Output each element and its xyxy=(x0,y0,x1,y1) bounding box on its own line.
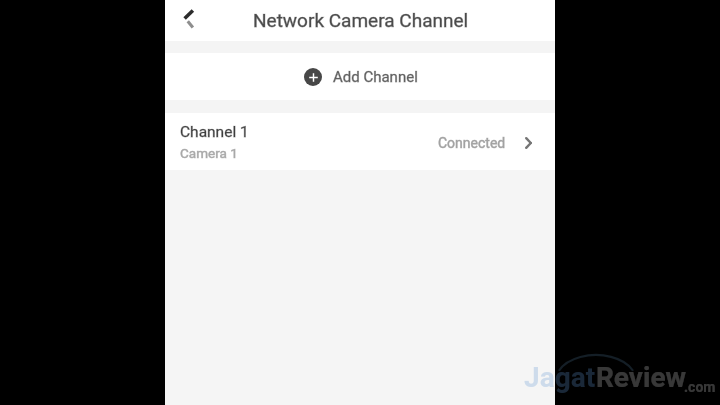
staticText: Add Channel xyxy=(333,68,418,86)
staticText: Network Camera Channel xyxy=(253,9,469,31)
staticText: Channel 1 xyxy=(180,123,249,141)
staticText: Connected xyxy=(438,135,506,151)
staticText: Channel 1 xyxy=(180,123,249,141)
staticText: Camera 1 xyxy=(180,145,238,161)
button[interactable]: Channel 1 xyxy=(165,113,555,170)
staticText: Add Channel xyxy=(333,68,418,86)
staticText: .com xyxy=(684,379,716,395)
staticText: Camera 1 xyxy=(180,145,238,161)
staticText: Jagat xyxy=(524,361,596,394)
button[interactable]: Back xyxy=(168,1,208,41)
staticText: Network Camera Channel xyxy=(253,9,469,31)
staticText: Review xyxy=(596,361,687,394)
button[interactable]: Add Channel xyxy=(165,53,555,100)
staticText: Connected xyxy=(438,135,506,151)
